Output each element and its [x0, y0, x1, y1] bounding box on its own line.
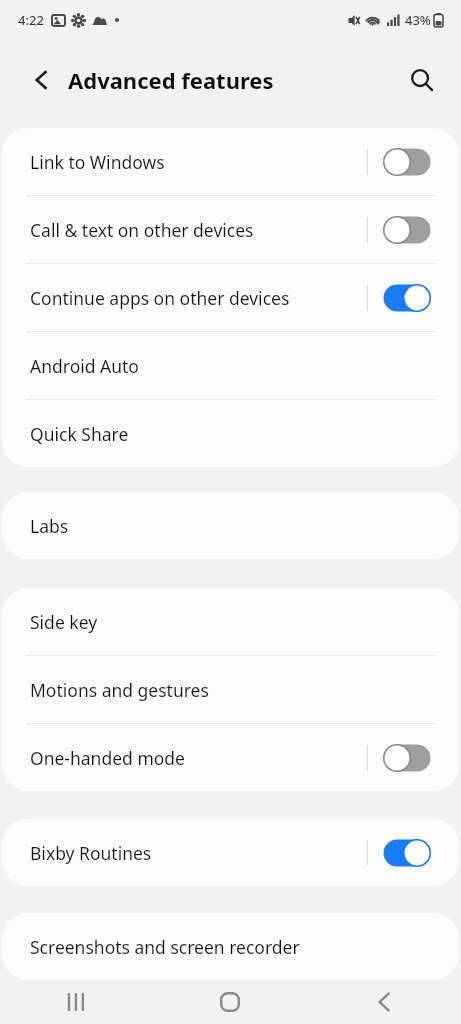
button[interactable]: Home [153, 980, 307, 1024]
staticText: Side key [30, 610, 459, 634]
button[interactable]: Screenshots and screen recorder [2, 913, 459, 980]
staticText: Android Auto [30, 354, 459, 378]
staticText: Advanced features [68, 65, 274, 95]
staticText: Screenshots and screen recorder [30, 935, 459, 959]
staticText: Motions and gestures [30, 678, 459, 702]
button[interactable]: One-handed mode [2, 724, 459, 791]
button[interactable]: Toggle on [383, 838, 431, 868]
staticText: Link to Windows [30, 150, 367, 174]
button[interactable]: Back [307, 980, 461, 1024]
button[interactable]: Side key [2, 588, 459, 655]
button[interactable]: Labs [2, 492, 459, 559]
staticText: Quick Share [30, 422, 459, 446]
button[interactable]: Android Auto [2, 332, 459, 399]
button[interactable]: Search [399, 57, 445, 103]
button[interactable]: Call & text on other devices [2, 196, 459, 263]
button[interactable]: Toggle off [383, 215, 431, 245]
staticText: 43% [405, 11, 431, 29]
button[interactable]: Toggle off [383, 743, 431, 773]
staticText: Continue apps on other devices [30, 286, 367, 310]
button[interactable]: Quick Share [2, 400, 459, 467]
staticText: 4:22 [18, 11, 44, 29]
button[interactable]: Continue apps on other devices [2, 264, 459, 331]
staticText: Bixby Routines [30, 841, 367, 865]
button[interactable]: Bixby Routines [2, 819, 459, 886]
staticText: Labs [30, 514, 459, 538]
button[interactable]: Recents [0, 980, 153, 1024]
button[interactable]: Toggle off [383, 147, 431, 177]
button[interactable]: Motions and gestures [2, 656, 459, 723]
staticText: Call & text on other devices [30, 218, 367, 242]
button[interactable]: Back [20, 58, 64, 102]
button[interactable]: Toggle on [383, 283, 431, 313]
staticText: One-handed mode [30, 746, 367, 770]
button[interactable]: Link to Windows [2, 128, 459, 195]
